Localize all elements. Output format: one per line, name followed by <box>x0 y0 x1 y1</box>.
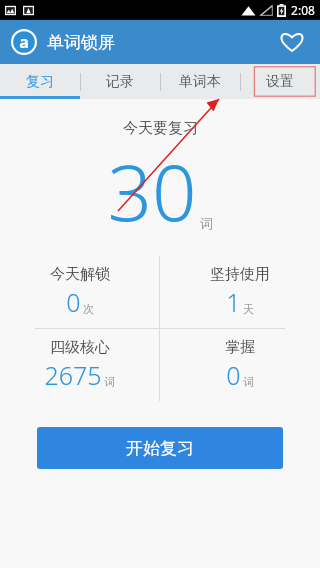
staticText: 30 <box>107 138 197 244</box>
staticText: 词 <box>104 375 115 389</box>
staticText: 词 <box>200 215 213 231</box>
staticText: 1 <box>226 285 241 319</box>
button[interactable]: 开始复习 <box>37 427 283 469</box>
staticText: 掌握 <box>225 338 255 357</box>
staticText: 复习 <box>26 73 54 91</box>
staticText: 今天解锁 <box>50 265 110 284</box>
button[interactable]: 四级核心 <box>0 329 159 401</box>
staticText: 次 <box>83 302 94 316</box>
staticText: 2675 <box>44 358 102 392</box>
button[interactable]: 设置 <box>240 64 320 99</box>
button[interactable]: 坚持使用 <box>160 256 320 328</box>
button[interactable]: Favorite <box>272 22 312 62</box>
staticText: 记录 <box>106 73 134 91</box>
staticText: 坚持使用 <box>210 265 270 284</box>
staticText: 词 <box>243 375 254 389</box>
staticText: 2:08 <box>291 2 315 18</box>
staticText: 单词本 <box>179 73 221 91</box>
button[interactable]: 记录 <box>80 64 160 99</box>
staticText: 设置 <box>266 73 294 91</box>
staticText: 开始复习 <box>126 438 194 459</box>
staticText: 天 <box>243 302 254 316</box>
staticText: 四级核心 <box>50 338 110 357</box>
staticText: a <box>19 31 29 53</box>
staticText: 0 <box>66 285 81 319</box>
button[interactable]: 复习 <box>0 64 80 99</box>
staticText: 今天要复习 <box>123 119 198 138</box>
button[interactable]: 单词本 <box>160 64 240 99</box>
button[interactable]: 掌握 <box>160 329 320 401</box>
button[interactable]: 今天解锁 <box>0 256 159 328</box>
staticText: 0 <box>226 358 241 392</box>
staticText: 单词锁屏 <box>47 32 115 53</box>
